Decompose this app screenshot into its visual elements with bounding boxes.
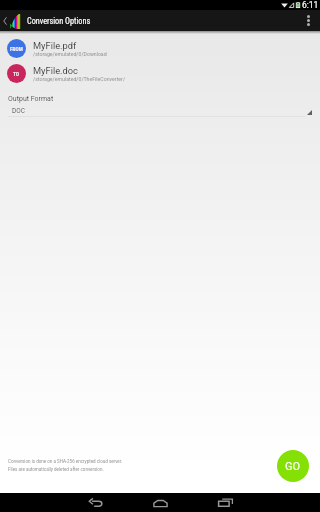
button[interactable]: Home — [149, 495, 171, 510]
button[interactable]: TO — [0, 61, 320, 86]
staticText: TO — [13, 71, 20, 77]
staticText: MyFile.pdf — [33, 40, 77, 51]
staticText: Output Format — [8, 95, 54, 103]
staticText: /storage/emulated/0/TheFileConverter/ — [33, 76, 126, 82]
staticText: Conversion Options — [27, 16, 91, 26]
button[interactable]: Recent apps — [214, 495, 236, 510]
button[interactable]: FROM — [0, 36, 320, 61]
staticText: Conversion is done on a SHA-256 encrypte… — [8, 459, 123, 472]
staticText: /storage/emulated/0/Download — [33, 51, 107, 57]
button[interactable]: Output Format — [0, 95, 320, 117]
button[interactable]: More options — [296, 10, 320, 31]
button[interactable]: Back — [85, 495, 107, 510]
button[interactable]: Navigate up — [0, 10, 9, 31]
staticText: 6:11 — [302, 0, 319, 10]
staticText: GO — [285, 460, 301, 473]
button[interactable]: GO — [277, 450, 309, 482]
staticText: DOC — [12, 107, 25, 115]
staticText: FROM — [10, 46, 23, 52]
staticText: MyFile.doc — [33, 65, 78, 76]
